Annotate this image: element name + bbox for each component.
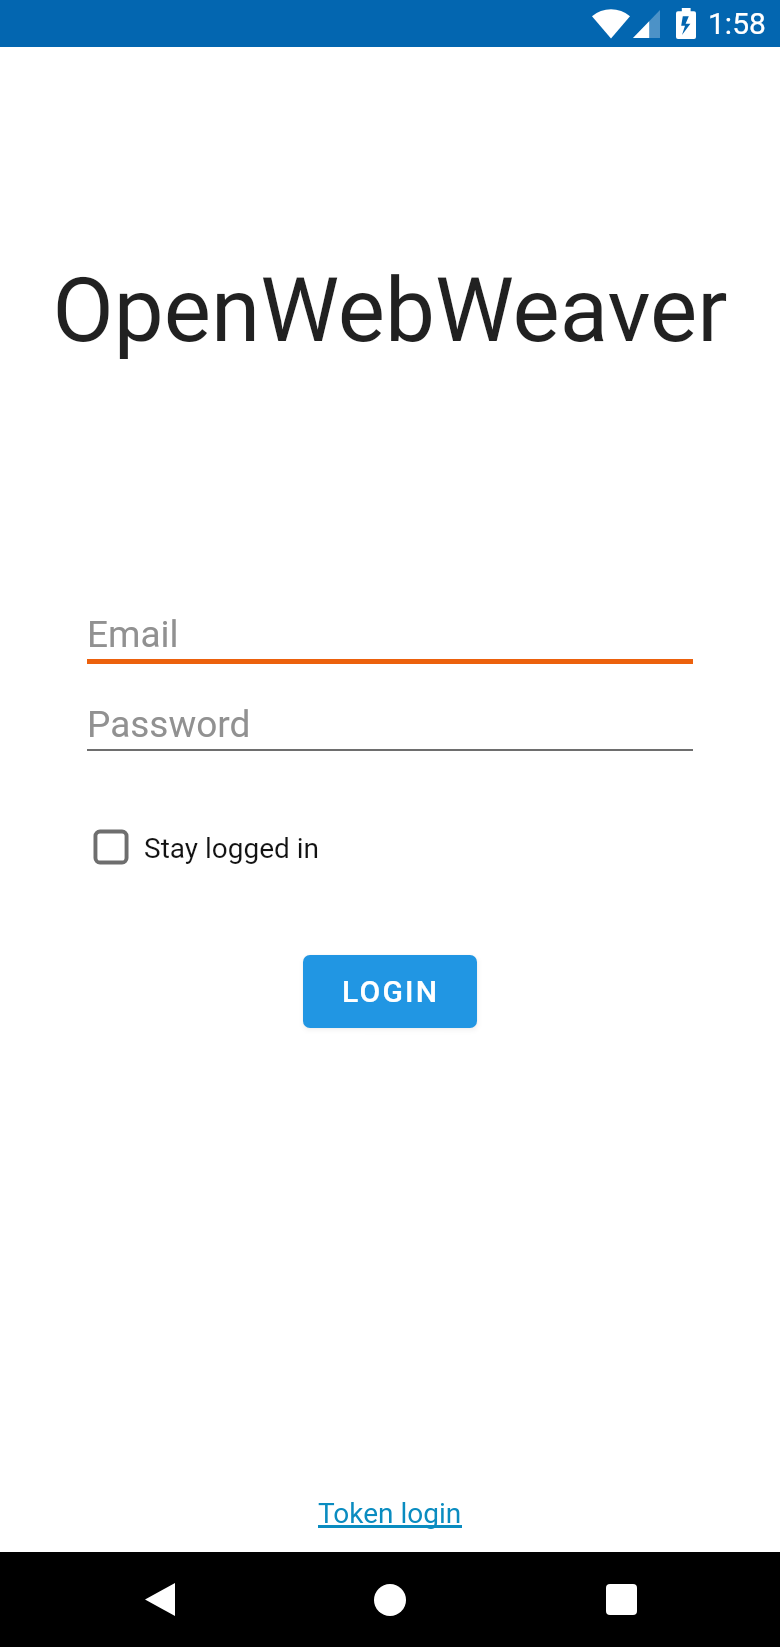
button[interactable]: Recent apps (566, 1552, 676, 1647)
staticText: Token login (318, 1497, 462, 1530)
staticText: Stay logged in (144, 832, 320, 865)
staticText: Email (87, 613, 179, 656)
staticText: LOGIN (342, 974, 440, 1009)
button[interactable]: LOGIN (303, 955, 477, 1028)
button[interactable]: Token login (318, 1484, 462, 1540)
staticText: 1:58 (708, 6, 766, 41)
staticText: OpenWebWeaver (0, 258, 780, 362)
button[interactable]: Stay logged in (90, 822, 320, 872)
staticText: Password (87, 703, 251, 746)
button[interactable]: Back (105, 1552, 215, 1647)
button[interactable]: Home (335, 1552, 445, 1647)
button[interactable]: Email (87, 600, 693, 670)
button[interactable]: Password (87, 690, 693, 755)
